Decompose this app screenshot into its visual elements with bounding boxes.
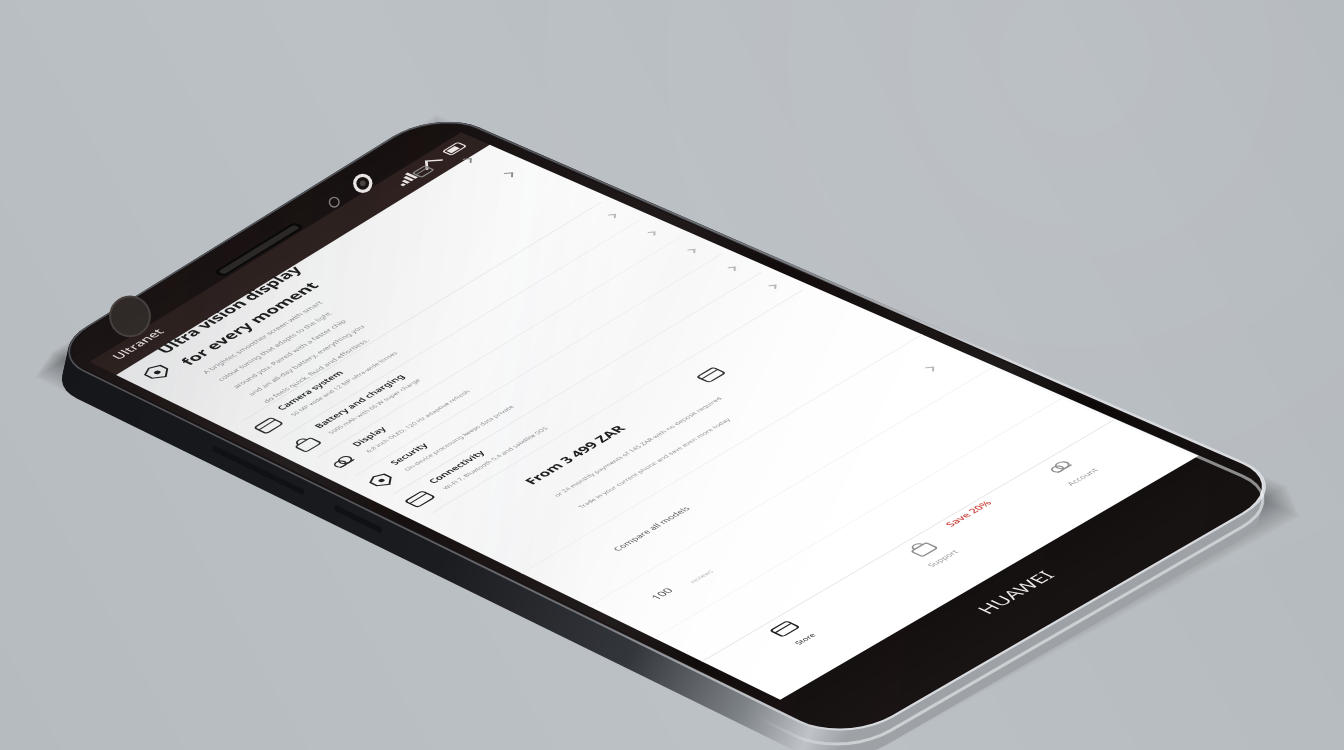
button[interactable]: Phone mockup showing Ultranet app xyxy=(0,0,1344,750)
